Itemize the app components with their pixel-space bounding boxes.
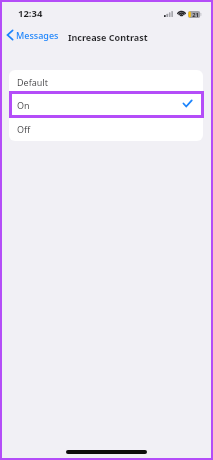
staticText: Default — [17, 76, 48, 88]
staticText: Increase Contrast — [68, 31, 148, 43]
button[interactable]: Default — [9, 70, 203, 92]
other: Back to Messages — [7, 30, 13, 40]
button[interactable]: Back to Messages — [2, 26, 65, 44]
button[interactable]: Off — [9, 117, 203, 140]
staticText: 21 — [192, 11, 199, 18]
button[interactable]: On — [9, 93, 203, 116]
staticText: Messages — [16, 29, 59, 41]
staticText: Off — [17, 123, 31, 135]
staticText: 12:34 — [18, 7, 43, 20]
staticText: On — [17, 99, 30, 111]
